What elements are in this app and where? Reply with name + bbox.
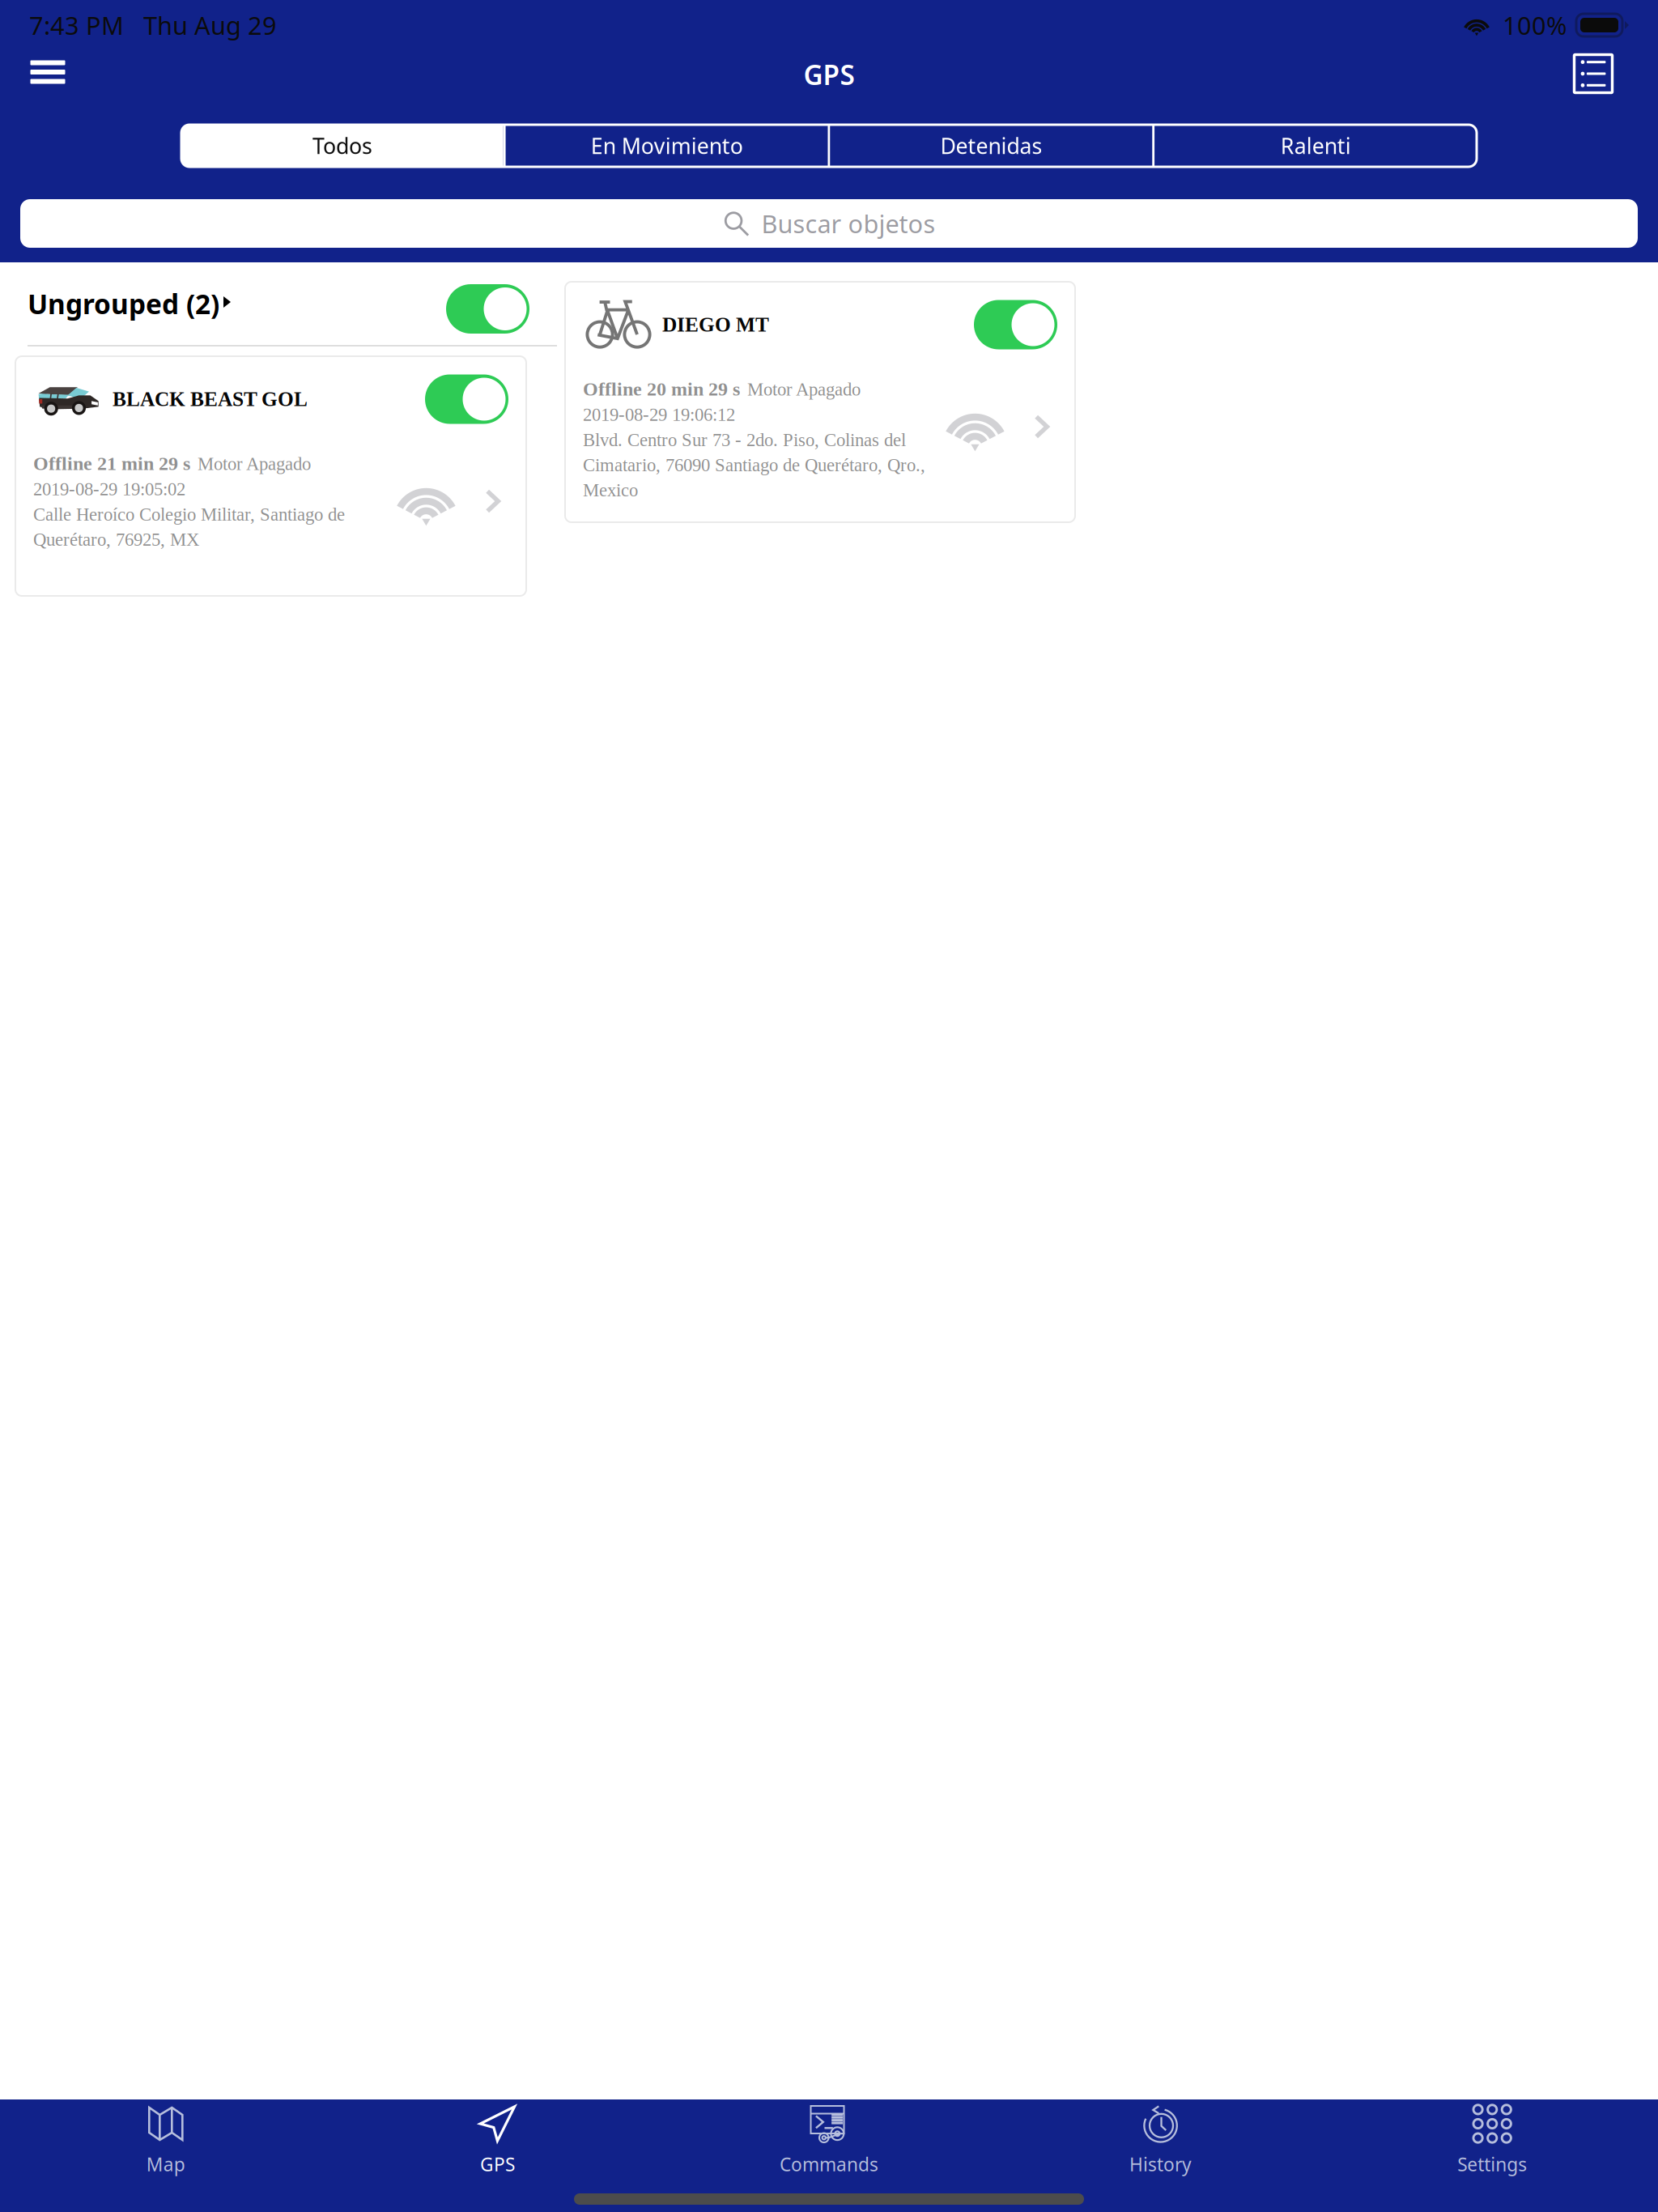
staticText: Thu Aug 29 bbox=[143, 9, 277, 42]
staticText: 2019-08-29 19:06:12 bbox=[583, 405, 735, 425]
staticText: En Movimiento bbox=[591, 131, 743, 160]
staticText: Offline 21 min 29 s bbox=[33, 453, 190, 474]
button[interactable]: Map bbox=[0, 2092, 332, 2202]
staticText: GPS bbox=[803, 57, 855, 92]
staticText: 100% bbox=[1503, 9, 1567, 42]
button[interactable]: List view bbox=[1568, 49, 1618, 99]
button[interactable]: Detenidas bbox=[830, 125, 1152, 167]
staticText: Mexico bbox=[583, 480, 638, 500]
button[interactable]: Settings bbox=[1326, 2092, 1658, 2202]
staticText: Offline 20 min 29 s bbox=[583, 378, 740, 400]
staticText: BLACK BEAST GOL bbox=[113, 388, 308, 411]
button[interactable]: History bbox=[995, 2092, 1326, 2202]
button[interactable]: DIEGO MT bbox=[565, 282, 1075, 522]
button[interactable]: Ralenti bbox=[1155, 125, 1477, 167]
staticText: 2019-08-29 19:05:02 bbox=[33, 479, 185, 499]
staticText: GPS bbox=[480, 2152, 515, 2176]
staticText: Ralenti bbox=[1280, 131, 1351, 160]
button[interactable]: BLACK BEAST GOL bbox=[15, 356, 526, 596]
button[interactable]: GPS bbox=[332, 2092, 663, 2202]
staticText: Calle Heroíco Colegio Militar, Santiago … bbox=[33, 504, 345, 524]
staticText: Todos bbox=[312, 131, 372, 160]
button[interactable]: Commands bbox=[663, 2092, 995, 2202]
staticText: Detenidas bbox=[940, 131, 1042, 160]
button[interactable]: Buscar objetos bbox=[20, 199, 1638, 248]
staticText: Buscar objetos bbox=[761, 207, 935, 240]
staticText: Querétaro, 76925, MX bbox=[33, 529, 199, 550]
staticText: 7:43 PM bbox=[29, 9, 124, 42]
staticText: Settings bbox=[1457, 2152, 1527, 2176]
staticText: Commands bbox=[780, 2152, 878, 2176]
staticText: Motor Apagado bbox=[198, 454, 311, 474]
staticText: Blvd. Centro Sur 73 - 2do. Piso, Colinas… bbox=[583, 430, 906, 450]
staticText: History bbox=[1129, 2152, 1192, 2176]
staticText: Motor Apagado bbox=[747, 379, 861, 399]
button[interactable]: Menu bbox=[17, 45, 79, 99]
staticText: DIEGO MT bbox=[662, 313, 769, 336]
button[interactable]: En Movimiento bbox=[506, 125, 828, 167]
staticText: Cimatario, 76090 Santiago de Querétaro, … bbox=[583, 455, 925, 475]
button[interactable]: Ungrouped (2) bbox=[0, 268, 551, 346]
staticText: Map bbox=[146, 2152, 185, 2176]
button[interactable]: Todos bbox=[181, 125, 503, 167]
staticText: Ungrouped (2) bbox=[28, 286, 219, 322]
